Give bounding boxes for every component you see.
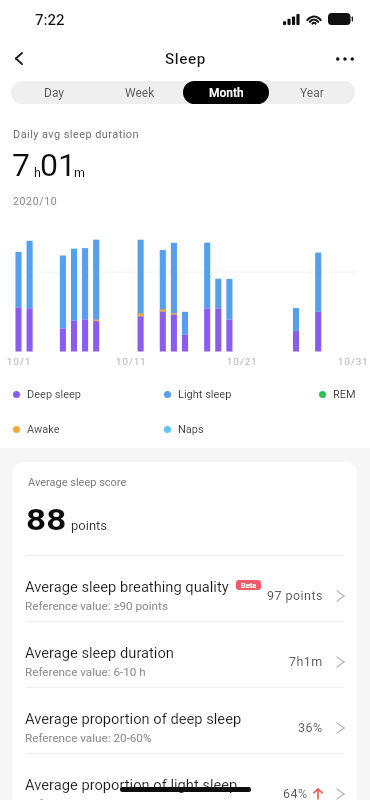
button[interactable]: Back — [3, 42, 35, 74]
staticText: Average sleep score — [28, 476, 127, 489]
button[interactable]: Year — [269, 81, 355, 104]
staticText: Week — [125, 86, 155, 100]
staticText: 10/1 — [7, 356, 32, 367]
staticText: Sleep — [165, 50, 206, 68]
staticText: Average proportion of deep sleep — [25, 710, 242, 727]
button[interactable]: Week — [97, 81, 183, 104]
staticText: 7 — [12, 146, 30, 184]
staticText: m — [74, 165, 85, 180]
staticText: Light sleep — [178, 388, 232, 401]
staticText: 10/11 — [116, 356, 147, 367]
button[interactable]: Average sleep breathing quality — [13, 556, 357, 621]
button[interactable]: Month — [183, 81, 269, 104]
staticText: Beta — [241, 581, 257, 590]
staticText: 7:22 — [35, 11, 65, 29]
staticText: 2020/10 — [13, 195, 58, 207]
staticText: 88 — [26, 503, 67, 537]
staticText: Month — [209, 86, 244, 100]
button[interactable]: Average proportion of light sleep — [13, 754, 357, 800]
staticText: 64% — [283, 786, 308, 800]
button[interactable]: Day — [11, 81, 97, 104]
staticText: Awake — [27, 423, 60, 436]
staticText: Average sleep breathing quality — [25, 578, 229, 595]
staticText: Deep sleep — [27, 388, 81, 401]
staticText: REM — [333, 388, 356, 401]
staticText: Average sleep duration — [25, 644, 174, 661]
staticText: 7h1m — [289, 654, 323, 669]
staticText: 36% — [298, 720, 323, 735]
staticText: Daily avg sleep duration — [13, 128, 139, 141]
staticText: 10/21 — [227, 356, 258, 367]
staticText: 97 points — [267, 588, 323, 603]
staticText: 10/31 — [338, 356, 369, 367]
staticText: Reference value: ≥90 points — [25, 599, 168, 613]
staticText: Day — [44, 86, 64, 100]
button[interactable]: Average sleep duration — [13, 622, 357, 687]
staticText: points — [71, 518, 108, 533]
staticText: Reference value: 6-10 h — [25, 665, 146, 679]
staticText: 01 — [40, 146, 76, 184]
staticText: h — [34, 165, 41, 180]
staticText: Reference value: 20-60% — [25, 797, 152, 800]
staticText: Reference value: 20-60% — [25, 731, 152, 745]
staticText: Year — [300, 86, 324, 100]
staticText: Average proportion of light sleep — [25, 776, 238, 793]
staticText: Naps — [178, 423, 204, 436]
button[interactable]: Average proportion of deep sleep — [13, 688, 357, 753]
button[interactable]: More options — [329, 43, 361, 75]
